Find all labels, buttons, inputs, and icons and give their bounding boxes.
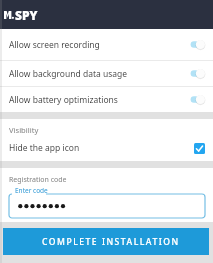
button[interactable]: Allow screen recording xyxy=(0,29,213,60)
button[interactable]: Enter code xyxy=(9,189,205,222)
button[interactable]: Hide the app icon xyxy=(0,135,213,161)
staticText: COMPLETE INSTALLATION xyxy=(42,236,180,248)
other: Hide the app icon xyxy=(194,143,205,154)
staticText: Allow screen recording xyxy=(9,39,100,51)
other: Toggle xyxy=(190,94,205,105)
staticText: Enter code xyxy=(15,186,48,195)
staticText: Allow background data usage xyxy=(9,68,128,80)
button[interactable]: COMPLETE INSTALLATION xyxy=(3,228,209,255)
other: Toggle xyxy=(190,68,205,79)
staticText: Allow battery optimizations xyxy=(9,94,118,106)
staticText: Registration code xyxy=(9,175,67,185)
other: Toggle xyxy=(190,39,205,50)
staticText: Visibility xyxy=(9,125,39,135)
staticText: SPY xyxy=(15,7,38,23)
button[interactable]: Allow battery optimizations xyxy=(0,87,213,112)
staticText: Hide the app icon xyxy=(9,142,80,154)
button[interactable]: Allow background data usage xyxy=(0,61,213,86)
